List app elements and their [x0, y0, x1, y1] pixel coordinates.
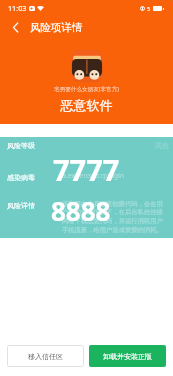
staticText: 11:03	[8, 3, 27, 13]
staticText: 风险项详情	[30, 21, 83, 34]
staticText: 宅男要什么女朋友(非官方)	[0, 85, 173, 93]
staticText: 移入信任区	[28, 352, 63, 361]
staticText: 7777	[53, 150, 120, 189]
button[interactable]: Back	[0, 16, 30, 39]
staticText: 卸载并安装正版	[103, 352, 152, 361]
button[interactable]: 卸载并安装正版	[89, 345, 166, 367]
staticText: 5	[147, 5, 151, 12]
staticText: 该应用内含有恶意扣费代码，会在用户不知情的情况下，在后台私自连接网络下载恶意代码…	[62, 200, 166, 234]
staticText: 8888	[51, 193, 111, 228]
staticText: 感染病毒	[7, 173, 35, 182]
staticText: 风险等级	[7, 141, 35, 150]
staticText: 恶意软件	[0, 97, 173, 113]
staticText: 风险详情	[7, 201, 35, 210]
staticText: 高危	[155, 141, 169, 150]
staticText: a.expense.crplugin	[62, 171, 125, 181]
button[interactable]: 移入信任区	[7, 345, 84, 367]
